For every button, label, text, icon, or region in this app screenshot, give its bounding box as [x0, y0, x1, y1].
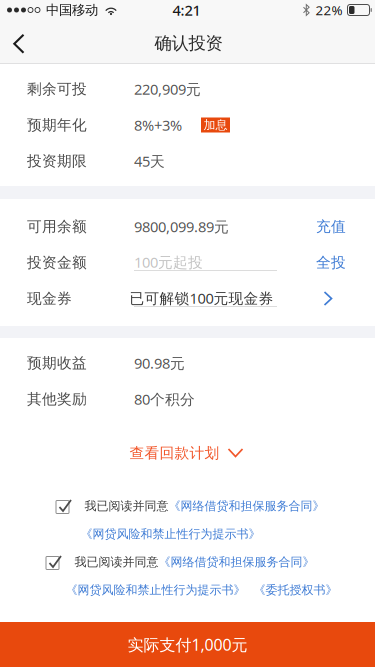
staticText: 加息 — [203, 118, 227, 132]
button[interactable]: 选择现金券 — [323, 290, 346, 306]
staticText: 《委托授权书》 — [253, 583, 337, 597]
staticText: 预期收益 — [27, 354, 87, 372]
staticText: 确认投资 — [154, 33, 222, 54]
staticText: 100元起投 — [134, 252, 203, 272]
button[interactable]: 《网贷风险和禁止性行为提示书》 — [65, 583, 245, 597]
staticText: 《网贷风险和禁止性行为提示书》 — [65, 583, 245, 597]
staticText: 剩余可投 — [27, 80, 87, 98]
button[interactable]: 全投 — [316, 253, 346, 271]
button[interactable]: 返回 — [0, 20, 56, 63]
staticText: 实际支付1,000元 — [127, 634, 247, 655]
staticText: 现金券 — [27, 289, 72, 307]
button[interactable]: 《网络借贷和担保服务合同》 — [168, 499, 324, 513]
staticText: 80个积分 — [134, 389, 195, 409]
staticText: 《网络借贷和担保服务合同》 — [168, 499, 324, 513]
staticText: 可用余额 — [27, 217, 87, 235]
staticText: 90.98元 — [134, 353, 185, 373]
button[interactable]: 《网贷风险和禁止性行为提示书》 — [80, 527, 260, 541]
button[interactable]: 实际支付1,000元 — [0, 622, 375, 667]
staticText: 我已阅读并同意 — [84, 499, 168, 513]
staticText: 9800,099.89元 — [134, 217, 229, 236]
staticText: 4:21 — [172, 0, 200, 20]
button[interactable]: 充值 — [316, 217, 346, 235]
staticText: 《网络借贷和担保服务合同》 — [158, 555, 314, 569]
staticText: 全投 — [316, 253, 346, 271]
staticText: 22% — [315, 1, 342, 19]
staticText: 预期年化 — [27, 116, 87, 134]
staticText: 我已阅读并同意 — [74, 555, 158, 569]
button[interactable]: 查看回款计划 — [0, 417, 375, 489]
staticText: 查看回款计划 — [129, 444, 219, 462]
staticText: 充值 — [316, 217, 346, 235]
staticText: 已可解锁100元现金券 — [129, 288, 273, 308]
staticText: 《网贷风险和禁止性行为提示书》 — [80, 527, 260, 541]
button[interactable]: 《网络借贷和担保服务合同》 — [158, 555, 314, 569]
staticText: 8%+3% — [134, 115, 182, 135]
button[interactable]: 同意协议一 — [55, 498, 71, 513]
staticText: 其他奖励 — [27, 390, 87, 408]
staticText: 中国移动 — [46, 2, 98, 18]
staticText: 220,909元 — [134, 79, 201, 99]
staticText: 45天 — [134, 151, 165, 171]
staticText: 投资期限 — [27, 152, 87, 170]
button[interactable]: 同意协议二 — [45, 554, 61, 569]
button[interactable]: 《委托授权书》 — [253, 583, 337, 597]
staticText: 投资金额 — [27, 253, 87, 271]
